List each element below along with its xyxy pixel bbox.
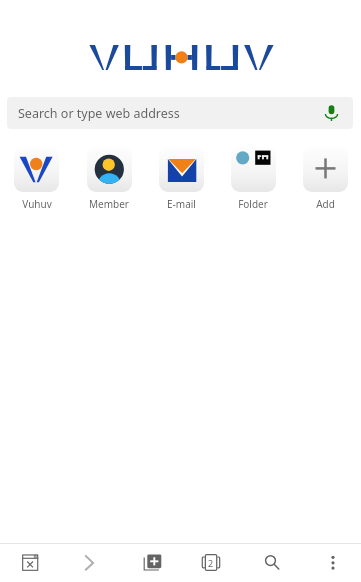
staticText: Folder xyxy=(238,197,268,211)
button[interactable]: Member xyxy=(73,147,145,211)
button[interactable]: E-mail xyxy=(145,147,217,211)
button[interactable]: More options xyxy=(301,544,361,582)
staticText: Search or type web address xyxy=(18,105,180,122)
button[interactable]: Forward xyxy=(61,544,121,582)
button[interactable]: Close tab xyxy=(0,544,61,582)
staticText: Vuhuv xyxy=(22,197,52,211)
staticText: 2 xyxy=(208,557,214,569)
button[interactable]: Tabs: 2 open xyxy=(181,544,241,582)
button[interactable]: Search or type web address xyxy=(7,97,353,129)
button[interactable]: Add xyxy=(289,147,361,211)
button[interactable]: Vuhuv xyxy=(0,147,73,211)
staticText: Add xyxy=(316,197,335,211)
button[interactable]: Voice search xyxy=(318,100,344,126)
button[interactable]: Folder xyxy=(217,147,289,211)
staticText: E-mail xyxy=(167,197,196,211)
button[interactable]: Search xyxy=(241,544,301,582)
staticText: Member xyxy=(89,197,129,211)
button[interactable]: New tab xyxy=(121,544,181,582)
